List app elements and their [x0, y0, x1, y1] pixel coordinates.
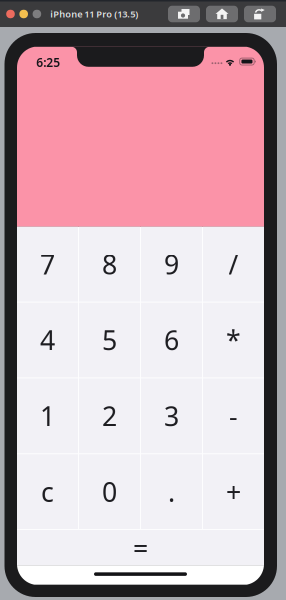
button[interactable]: Rotate — [244, 6, 276, 22]
staticText: 1 — [40, 398, 55, 433]
staticText: - — [229, 398, 238, 433]
staticText: 3 — [164, 398, 179, 433]
staticText: = — [133, 530, 148, 565]
button[interactable]: / — [203, 227, 264, 302]
button[interactable]: Minimize — [19, 10, 28, 18]
button[interactable]: + — [203, 454, 264, 529]
button[interactable]: 3 — [141, 378, 202, 453]
button[interactable]: 9 — [141, 227, 202, 302]
staticText: iPhone 11 Pro (13.5) — [50, 8, 138, 20]
staticText: / — [228, 246, 238, 282]
staticText: 6 — [164, 322, 179, 358]
button[interactable]: = — [17, 530, 264, 565]
staticText: 4 — [40, 322, 55, 358]
staticText: 9 — [164, 246, 179, 282]
button[interactable]: - — [203, 378, 264, 453]
staticText: 6:25 — [36, 54, 60, 70]
staticText: 0 — [102, 474, 117, 509]
button[interactable]: Home — [206, 6, 238, 22]
button[interactable]: c — [17, 454, 78, 529]
staticText: 2 — [102, 398, 117, 433]
button[interactable]: * — [203, 303, 264, 377]
button[interactable]: 4 — [17, 303, 78, 377]
staticText: . — [168, 474, 175, 509]
staticText: 8 — [102, 246, 117, 282]
button[interactable]: Screenshot — [168, 6, 200, 22]
button[interactable]: . — [141, 454, 202, 529]
button[interactable]: 2 — [79, 378, 140, 453]
button[interactable]: Close — [6, 10, 15, 18]
staticText: 5 — [102, 322, 117, 358]
staticText: + — [226, 474, 241, 509]
button[interactable]: 0 — [79, 454, 140, 529]
button[interactable]: 5 — [79, 303, 140, 377]
staticText: 7 — [40, 246, 55, 282]
button[interactable]: 7 — [17, 227, 78, 302]
button[interactable]: 1 — [17, 378, 78, 453]
staticText: * — [226, 322, 241, 358]
staticText: c — [41, 474, 54, 509]
button[interactable]: 6 — [141, 303, 202, 377]
button[interactable]: 8 — [79, 227, 140, 302]
button[interactable]: Zoom — [33, 10, 41, 18]
